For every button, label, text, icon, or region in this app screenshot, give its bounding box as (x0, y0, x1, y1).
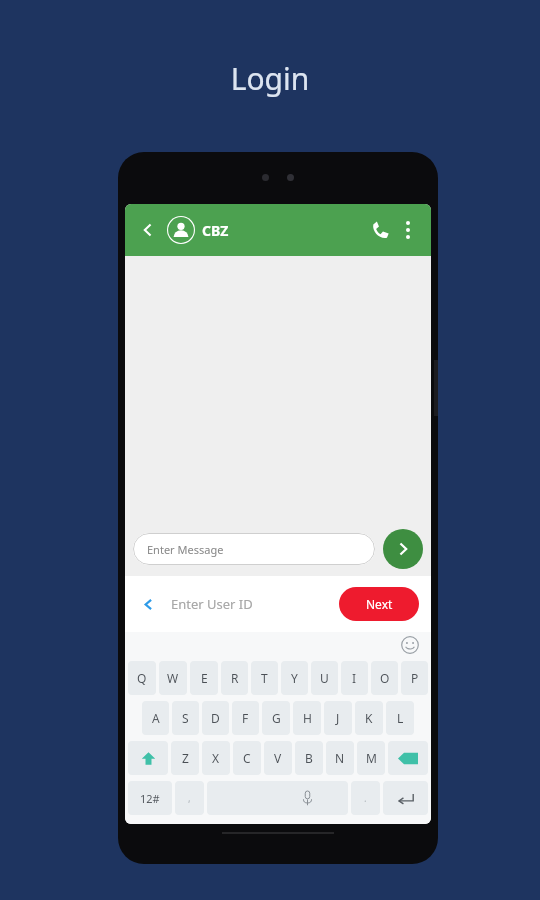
staticText: H (303, 710, 312, 726)
staticText: 12# (140, 791, 160, 806)
button[interactable]: Z (171, 741, 199, 775)
button[interactable]: T (251, 661, 278, 695)
button[interactable]: Call (365, 215, 395, 245)
button[interactable]: Y (281, 661, 308, 695)
staticText: I (352, 670, 357, 686)
staticText: D (211, 710, 220, 726)
button[interactable]: L (386, 701, 414, 735)
button[interactable]: F (232, 701, 259, 735)
button[interactable]: K (355, 701, 383, 735)
staticText: L (397, 710, 404, 726)
button[interactable]: J (324, 701, 352, 735)
staticText: U (320, 670, 329, 686)
staticText: O (380, 670, 390, 686)
button[interactable]: Send (383, 529, 423, 569)
staticText: . (364, 791, 367, 805)
button[interactable]: U (311, 661, 338, 695)
staticText: C (243, 750, 251, 766)
staticText: Z (182, 750, 189, 766)
button[interactable]: M (357, 741, 385, 775)
staticText: J (336, 710, 340, 726)
button[interactable]: Back (137, 593, 159, 615)
button[interactable]: C (233, 741, 261, 775)
staticText: Enter User ID (171, 595, 253, 613)
button[interactable]: H (293, 701, 321, 735)
staticText: S (182, 710, 189, 726)
staticText: E (201, 670, 208, 686)
staticText: N (335, 750, 345, 766)
staticText: Enter Message (147, 542, 224, 557)
button[interactable]: X (202, 741, 230, 775)
staticText: R (231, 670, 239, 686)
staticText: , (188, 791, 191, 805)
button[interactable]: Enter User ID (171, 595, 339, 613)
button[interactable]: B (295, 741, 323, 775)
staticText: P (411, 670, 419, 686)
button[interactable]: 12# (128, 781, 172, 815)
staticText: K (365, 710, 373, 726)
button[interactable]: Enter (383, 781, 428, 815)
staticText: Q (137, 670, 147, 686)
staticText: CBZ (202, 221, 229, 240)
button[interactable]: G (262, 701, 290, 735)
button[interactable]: O (371, 661, 398, 695)
staticText: T (261, 670, 268, 686)
staticText: W (167, 670, 179, 686)
button[interactable]: Space (207, 781, 348, 815)
button[interactable]: Backspace (388, 741, 428, 775)
staticText: M (366, 750, 377, 766)
staticText: B (305, 750, 313, 766)
button[interactable]: V (264, 741, 292, 775)
button[interactable]: Enter Message (133, 533, 375, 565)
button[interactable]: N (326, 741, 354, 775)
staticText: V (274, 750, 282, 766)
staticText: Next (366, 596, 393, 612)
button[interactable]: W (159, 661, 187, 695)
button[interactable]: More options (395, 217, 421, 243)
button[interactable]: P (401, 661, 428, 695)
button[interactable]: Shift (128, 741, 168, 775)
button[interactable]: D (202, 701, 229, 735)
button[interactable]: I (341, 661, 368, 695)
button[interactable]: Next (339, 587, 419, 621)
staticText: Login (0, 58, 540, 99)
button[interactable]: E (190, 661, 218, 695)
button[interactable]: Q (128, 661, 156, 695)
button[interactable]: Contact avatar (167, 216, 195, 244)
staticText: Y (291, 670, 298, 686)
button[interactable]: R (221, 661, 248, 695)
staticText: A (152, 710, 160, 726)
staticText: F (242, 710, 249, 726)
staticText: X (212, 750, 220, 766)
button[interactable]: Emoji (401, 636, 419, 654)
button[interactable]: S (172, 701, 199, 735)
staticText: G (272, 710, 281, 726)
button[interactable]: A (142, 701, 169, 735)
button[interactable]: Back (135, 217, 161, 243)
